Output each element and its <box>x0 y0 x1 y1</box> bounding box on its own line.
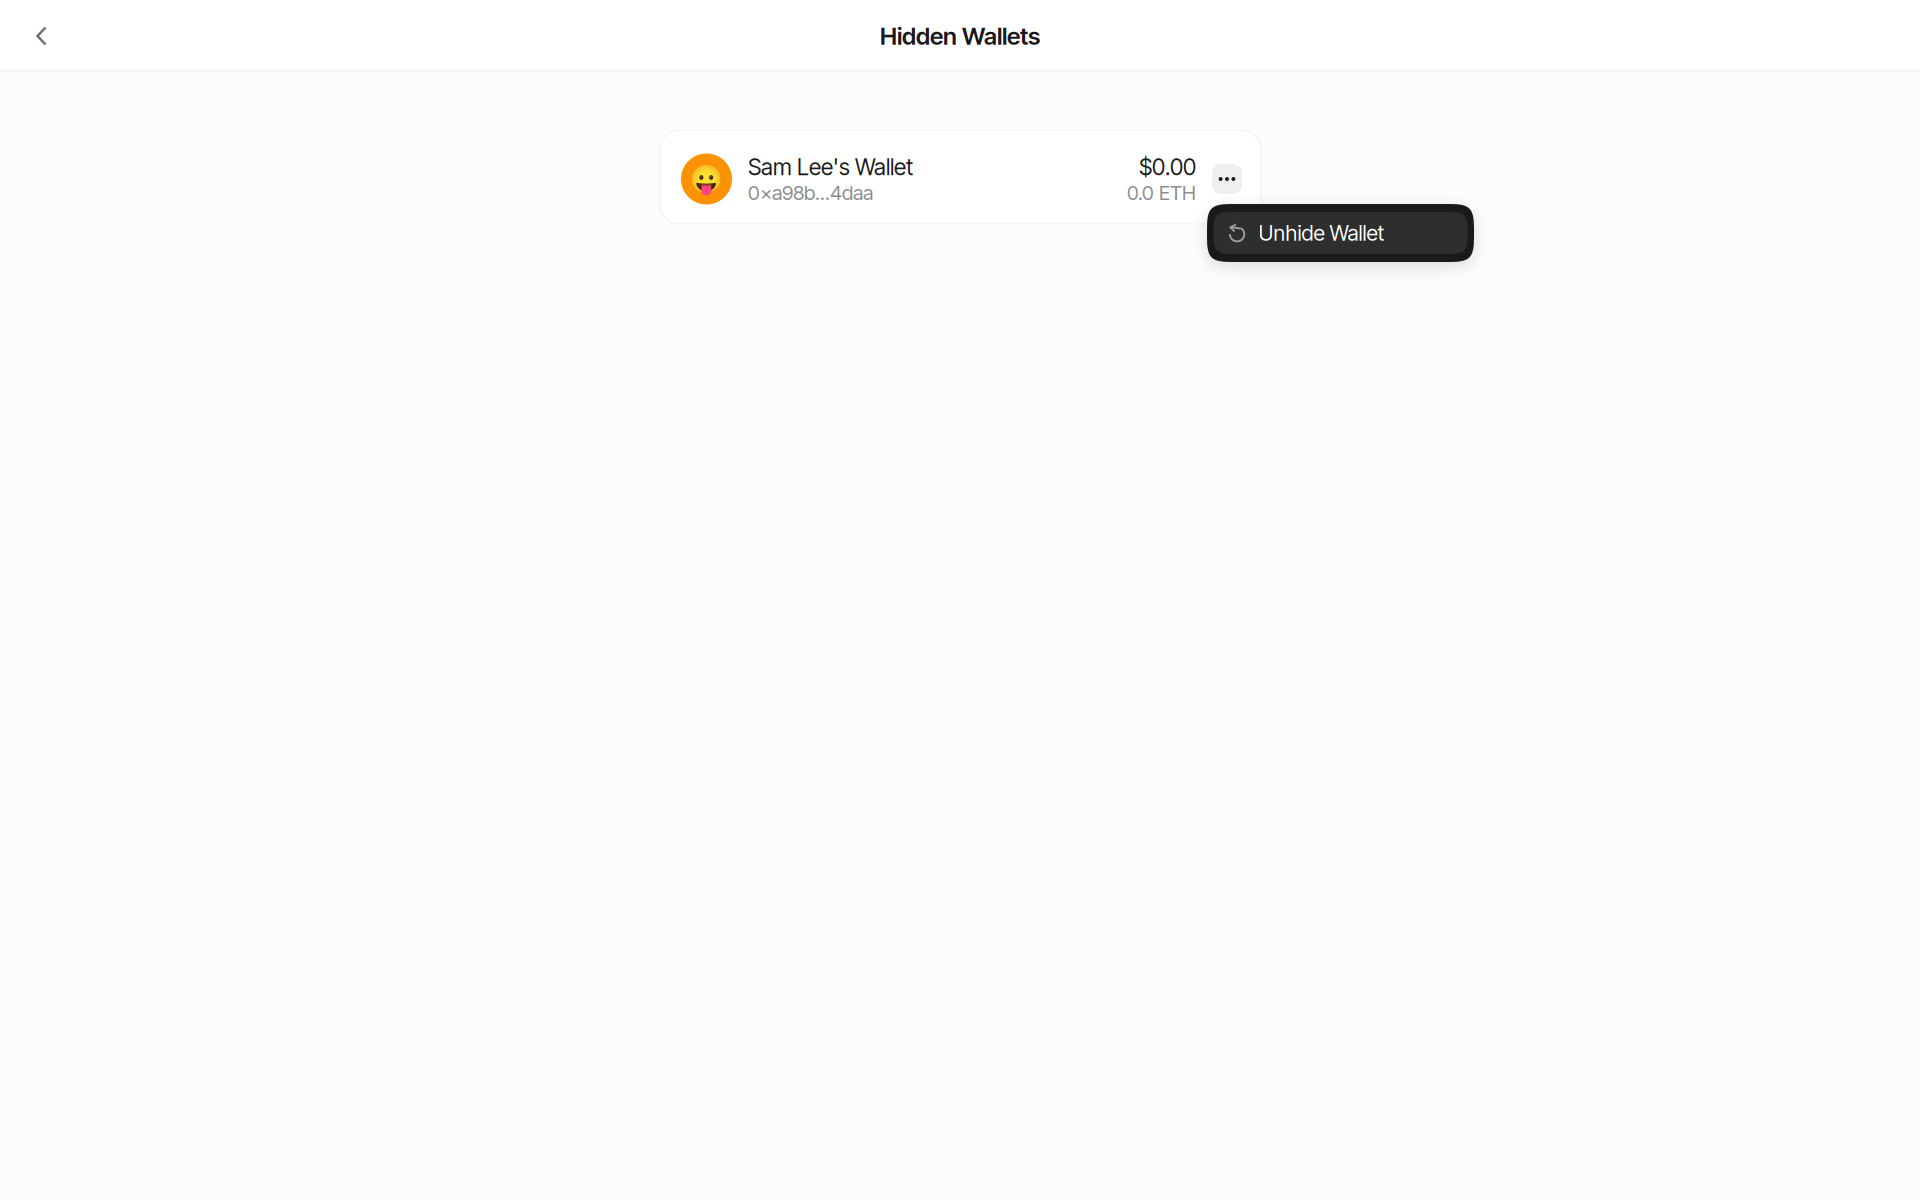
staticText: $0.00 <box>1139 153 1196 181</box>
staticText: 😛 <box>689 163 724 195</box>
button[interactable]: Unhide Wallet <box>1207 204 1474 262</box>
staticText: Sam Lee's Wallet <box>748 153 913 181</box>
staticText: Unhide Wallet <box>1258 220 1384 246</box>
staticText: 0.0 ETH <box>1127 181 1196 205</box>
button[interactable]: More options <box>1212 164 1242 194</box>
button[interactable]: Back <box>19 13 63 57</box>
staticText: 0×a98b...4daa <box>748 181 873 205</box>
staticText: Hidden Wallets <box>880 21 1040 50</box>
